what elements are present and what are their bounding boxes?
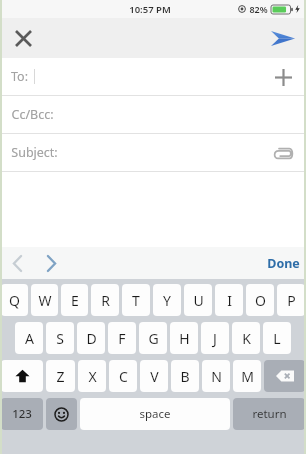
staticText: L [273,329,281,348]
staticText: F [118,329,126,348]
button[interactable]: Done [267,255,300,272]
button[interactable]: Next field [34,248,68,278]
staticText: B [180,367,190,386]
button[interactable]: E [61,284,88,316]
button[interactable]: M [233,360,261,392]
staticText: 123 [12,406,32,422]
button[interactable]: Y [153,284,181,316]
button[interactable]: Send [265,20,301,56]
staticText: M [241,367,254,386]
staticText: J [213,329,217,348]
staticText: H [179,329,190,348]
button[interactable]: N [202,360,230,392]
button[interactable]: Add contact [268,60,298,94]
staticText: A [25,329,34,348]
button[interactable]: G [139,322,167,354]
button[interactable]: Previous field [0,248,34,278]
staticText: C [119,367,128,386]
staticText: D [86,329,97,348]
button[interactable]: space [80,398,230,430]
staticText: Cc/Bcc: [11,106,54,123]
button[interactable]: P [277,284,305,316]
staticText: E [71,291,79,310]
button[interactable]: 123 [1,398,43,430]
button[interactable]: Q [1,284,28,316]
staticText: K [242,329,251,348]
button[interactable]: V [140,360,168,392]
button[interactable]: B [171,360,199,392]
button[interactable]: Subject: [0,134,306,171]
button[interactable]: Close [6,21,40,55]
staticText: 10:57 PM [129,3,171,16]
button[interactable]: L [263,322,291,354]
button[interactable]: R [91,284,119,316]
staticText: To: [11,68,28,85]
button[interactable]: J [201,322,229,354]
staticText: P [287,291,296,310]
button[interactable]: T [122,284,150,316]
staticText: Done [267,255,300,272]
staticText: O [255,291,266,310]
staticText: U [193,291,204,310]
staticText: 82% [249,3,268,15]
button[interactable]: U [184,284,212,316]
button[interactable]: Z [46,360,75,392]
button[interactable]: Attach file [266,136,300,170]
button[interactable]: Backspace [264,360,305,392]
button[interactable]: Emoji [46,398,77,430]
staticText: G [148,329,159,348]
button[interactable]: K [232,322,260,354]
staticText: V [150,367,159,386]
button[interactable]: H [170,322,198,354]
button[interactable]: Shift [1,360,43,392]
staticText: Z [56,367,65,386]
button[interactable]: D [77,322,105,354]
staticText: R [101,291,110,310]
staticText: W [38,291,52,310]
button[interactable]: W [31,284,58,316]
button[interactable]: O [246,284,274,316]
button[interactable]: I [215,284,243,316]
button[interactable]: F [108,322,136,354]
button[interactable]: S [46,322,74,354]
button[interactable]: A [15,322,43,354]
staticText: Subject: [11,144,58,161]
staticText: X [88,367,97,386]
staticText: Q [9,291,20,310]
staticText: I [227,291,232,310]
button[interactable]: X [78,360,106,392]
button[interactable]: To: [0,58,306,95]
button[interactable]: Cc/Bcc: [0,96,306,133]
staticText: return [252,406,287,422]
staticText: space [139,406,171,422]
staticText: Y [163,291,171,310]
button[interactable]: C [109,360,137,392]
staticText: N [211,367,222,386]
staticText: S [56,329,64,348]
staticText: T [132,291,140,310]
button[interactable]: return [233,398,305,430]
